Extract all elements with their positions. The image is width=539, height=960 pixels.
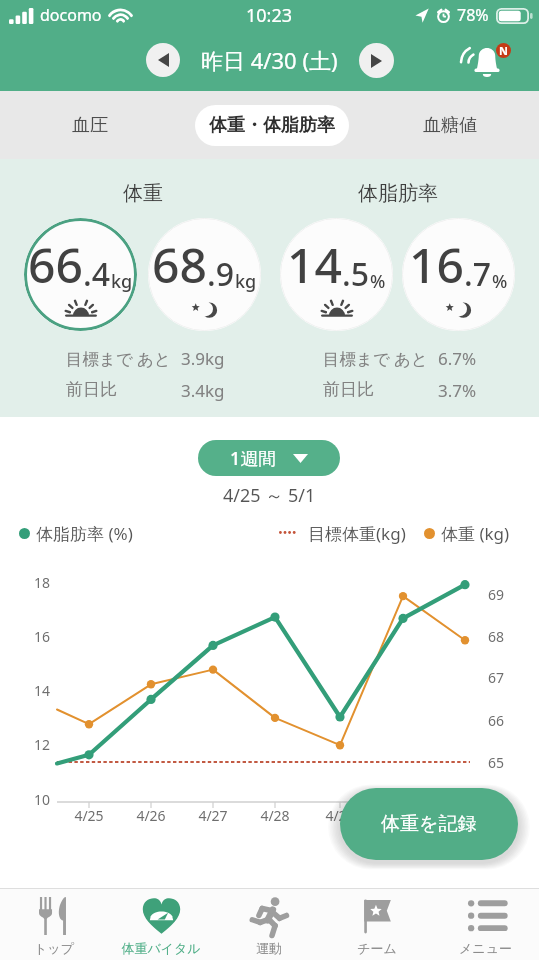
staticText: % <box>370 269 386 294</box>
button[interactable]: Notifications <box>455 38 510 80</box>
staticText: 18 <box>33 573 50 591</box>
staticText: 66 <box>28 232 83 297</box>
staticText: 14 <box>287 232 342 297</box>
staticText: 4/26 <box>136 806 166 824</box>
button[interactable]: 66 <box>24 218 137 331</box>
button[interactable]: 運動 <box>215 889 323 960</box>
staticText: 4/27 <box>198 806 228 824</box>
staticText: 前日比 <box>323 379 374 400</box>
staticText: 4/25 ～ 5/1 <box>223 483 316 508</box>
button[interactable]: 68 <box>148 218 261 331</box>
staticText: 血圧 <box>72 114 108 137</box>
staticText: 血糖値 <box>423 114 477 137</box>
staticText: 1週間 <box>230 446 277 471</box>
button[interactable]: Previous day <box>146 43 180 77</box>
staticText: .7 <box>464 252 492 296</box>
staticText: % <box>492 269 508 294</box>
staticText: 体重バイタル <box>121 940 201 956</box>
staticText: 体重を記録 <box>381 812 477 836</box>
staticText: メニュー <box>459 940 512 956</box>
staticText: トップ <box>34 940 74 956</box>
staticText: 体重 (kg) <box>441 522 510 545</box>
staticText: 4/30 <box>388 806 418 824</box>
staticText: 4/25 <box>74 806 104 824</box>
staticText: 3.9kg <box>181 347 225 370</box>
staticText: 体脂肪率 <box>358 181 438 206</box>
staticText: 3.7% <box>438 379 477 402</box>
button[interactable]: メニュー <box>431 889 539 960</box>
staticText: 昨日 4/30 (土) <box>201 45 338 75</box>
staticText: チーム <box>357 940 397 956</box>
staticText: 14 <box>33 681 50 699</box>
staticText: 68 <box>152 232 207 297</box>
staticText: 目標まで あと <box>323 347 428 370</box>
staticText: kg <box>111 269 133 294</box>
staticText: 78% <box>457 4 489 26</box>
staticText: N <box>499 43 508 58</box>
staticText: 4/29 <box>325 806 355 824</box>
staticText: 前日比 <box>66 379 117 400</box>
button[interactable]: 体重バイタル <box>107 889 215 960</box>
button[interactable]: トップ <box>0 889 107 960</box>
staticText: kg <box>235 269 257 294</box>
staticText: 16 <box>409 232 464 297</box>
button[interactable]: 体重を記録 <box>340 788 518 860</box>
staticText: 68 <box>488 627 505 645</box>
staticText: 体重・体脂肪率 <box>209 114 335 137</box>
staticText: 4/28 <box>260 806 290 824</box>
staticText: 3.4kg <box>181 379 225 402</box>
button[interactable]: 血圧 <box>0 91 195 159</box>
staticText: 69 <box>488 585 505 603</box>
staticText: 65 <box>488 753 505 771</box>
staticText: 6.7% <box>438 347 477 370</box>
staticText: 16 <box>33 627 50 645</box>
staticText: docomo <box>40 4 102 26</box>
staticText: .4 <box>83 252 111 296</box>
staticText: 目標体重(kg) <box>308 522 406 545</box>
button[interactable]: 体重・体脂肪率 <box>195 91 349 159</box>
button[interactable]: 1週間 <box>198 440 340 476</box>
staticText: 66 <box>488 711 505 729</box>
staticText: 目標まで あと <box>66 347 171 370</box>
button[interactable]: 血糖値 <box>349 91 539 159</box>
button[interactable]: 14 <box>280 218 393 331</box>
staticText: 10 <box>33 790 50 808</box>
staticText: 運動 <box>256 940 282 956</box>
staticText: 12 <box>33 735 50 753</box>
staticText: 体重 <box>123 181 163 206</box>
staticText: .9 <box>207 252 235 296</box>
staticText: 10:23 <box>246 3 293 28</box>
button[interactable]: 16 <box>402 218 515 331</box>
staticText: .5 <box>342 252 370 296</box>
staticText: 5/1 <box>454 806 476 824</box>
button[interactable]: Next day <box>359 43 394 78</box>
staticText: 体脂肪率 (%) <box>36 522 133 545</box>
button[interactable]: チーム <box>323 889 431 960</box>
staticText: 67 <box>488 668 505 686</box>
